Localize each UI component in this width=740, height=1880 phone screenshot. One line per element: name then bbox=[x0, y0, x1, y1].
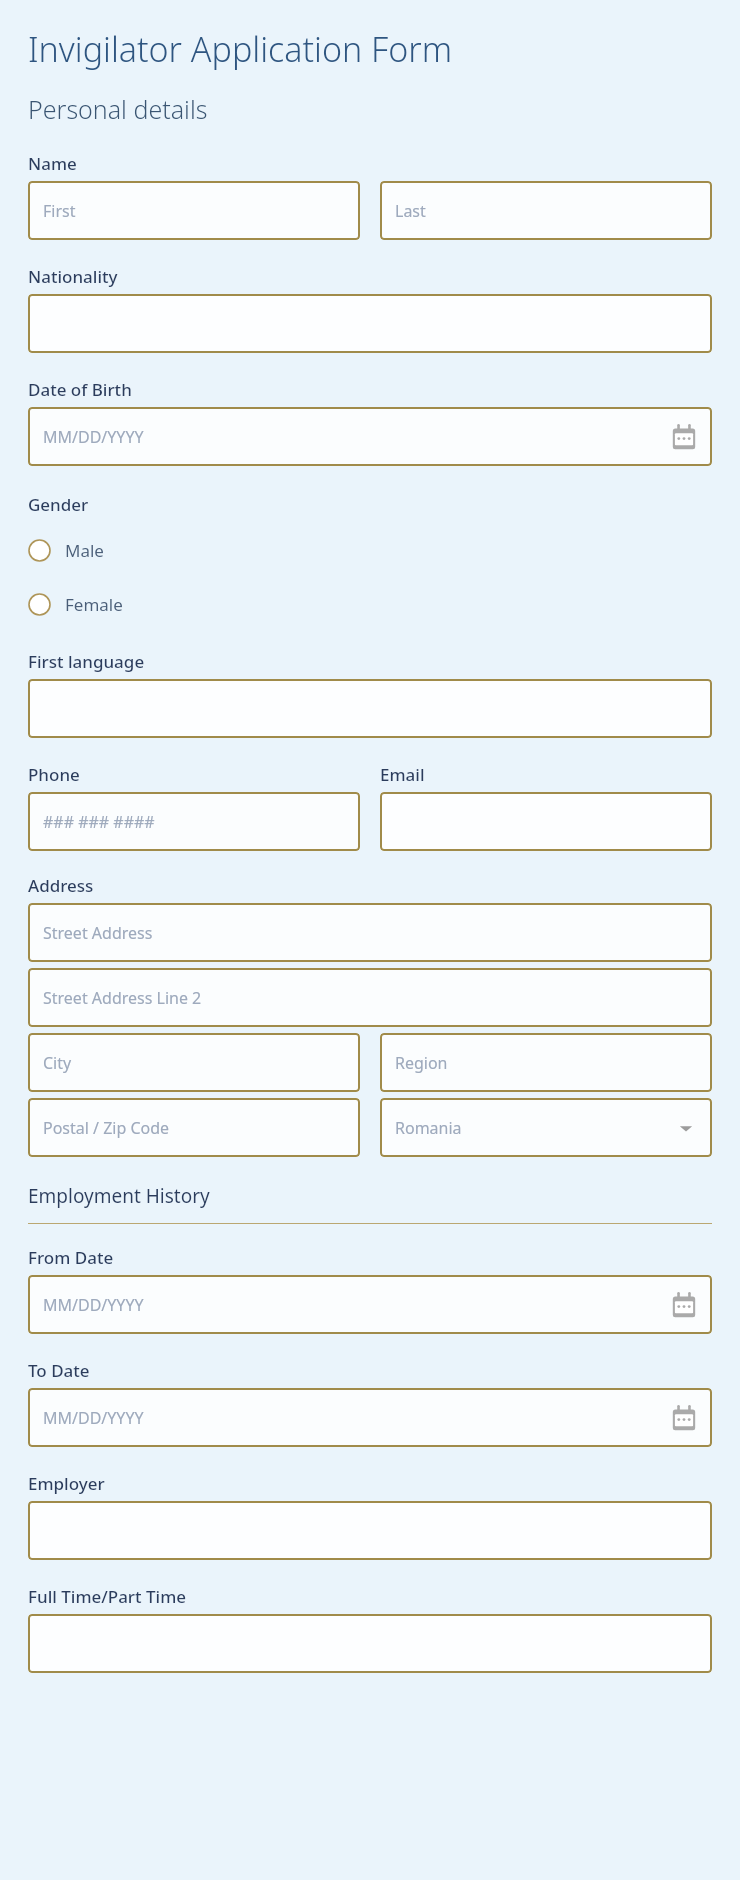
button[interactable]: MM/DD/YYYY bbox=[28, 1388, 712, 1447]
button[interactable]: MM/DD/YYYY bbox=[28, 407, 712, 466]
staticText: Date of Birth bbox=[28, 378, 132, 401]
button[interactable]: Postal / Zip Code bbox=[28, 1098, 360, 1157]
staticText: Phone bbox=[28, 763, 80, 786]
button[interactable] bbox=[28, 1614, 712, 1673]
staticText: First language bbox=[28, 650, 145, 673]
staticText: Employment History bbox=[28, 1183, 210, 1209]
button[interactable]: Street Address Line 2 bbox=[28, 968, 712, 1027]
staticText: Gender bbox=[28, 493, 89, 516]
staticText: MM/DD/YYYY bbox=[43, 426, 144, 448]
staticText: Personal details bbox=[28, 92, 208, 126]
staticText: City bbox=[43, 1052, 72, 1074]
staticText: Male bbox=[65, 539, 104, 562]
button[interactable] bbox=[28, 1501, 712, 1560]
staticText: Street Address Line 2 bbox=[43, 987, 202, 1009]
staticText: Full Time/Part Time bbox=[28, 1585, 186, 1608]
staticText: Email bbox=[380, 763, 425, 786]
staticText: From Date bbox=[28, 1246, 114, 1269]
button[interactable]: Pick date bbox=[671, 424, 697, 450]
button[interactable] bbox=[28, 679, 712, 738]
button[interactable] bbox=[28, 294, 712, 353]
button[interactable]: First bbox=[28, 181, 360, 240]
button[interactable]: Open country list bbox=[675, 1117, 697, 1139]
button[interactable]: Street Address bbox=[28, 903, 712, 962]
staticText: Romania bbox=[395, 1117, 462, 1139]
staticText: Last bbox=[395, 200, 426, 222]
button[interactable]: Pick date bbox=[671, 1405, 697, 1431]
button[interactable]: Romania bbox=[380, 1098, 712, 1157]
button[interactable]: Female bbox=[28, 584, 712, 624]
staticText: MM/DD/YYYY bbox=[43, 1407, 144, 1429]
button[interactable]: City bbox=[28, 1033, 360, 1092]
button[interactable]: Region bbox=[380, 1033, 712, 1092]
staticText: Postal / Zip Code bbox=[43, 1117, 170, 1139]
staticText: MM/DD/YYYY bbox=[43, 1294, 144, 1316]
staticText: Invigilator Application Form bbox=[28, 26, 453, 72]
staticText: Name bbox=[28, 152, 77, 175]
staticText: Region bbox=[395, 1052, 448, 1074]
button[interactable] bbox=[380, 792, 712, 851]
button[interactable]: Pick date bbox=[671, 1292, 697, 1318]
staticText: Employer bbox=[28, 1472, 105, 1495]
staticText: First bbox=[43, 200, 76, 222]
staticText: Female bbox=[65, 593, 123, 616]
button[interactable]: ### ### #### bbox=[28, 792, 360, 851]
button[interactable]: Male bbox=[28, 530, 712, 570]
staticText: Nationality bbox=[28, 265, 118, 288]
staticText: ### ### #### bbox=[43, 811, 155, 833]
staticText: To Date bbox=[28, 1359, 90, 1382]
button[interactable]: MM/DD/YYYY bbox=[28, 1275, 712, 1334]
button[interactable]: Last bbox=[380, 181, 712, 240]
staticText: Street Address bbox=[43, 922, 153, 944]
staticText: Address bbox=[28, 874, 94, 897]
